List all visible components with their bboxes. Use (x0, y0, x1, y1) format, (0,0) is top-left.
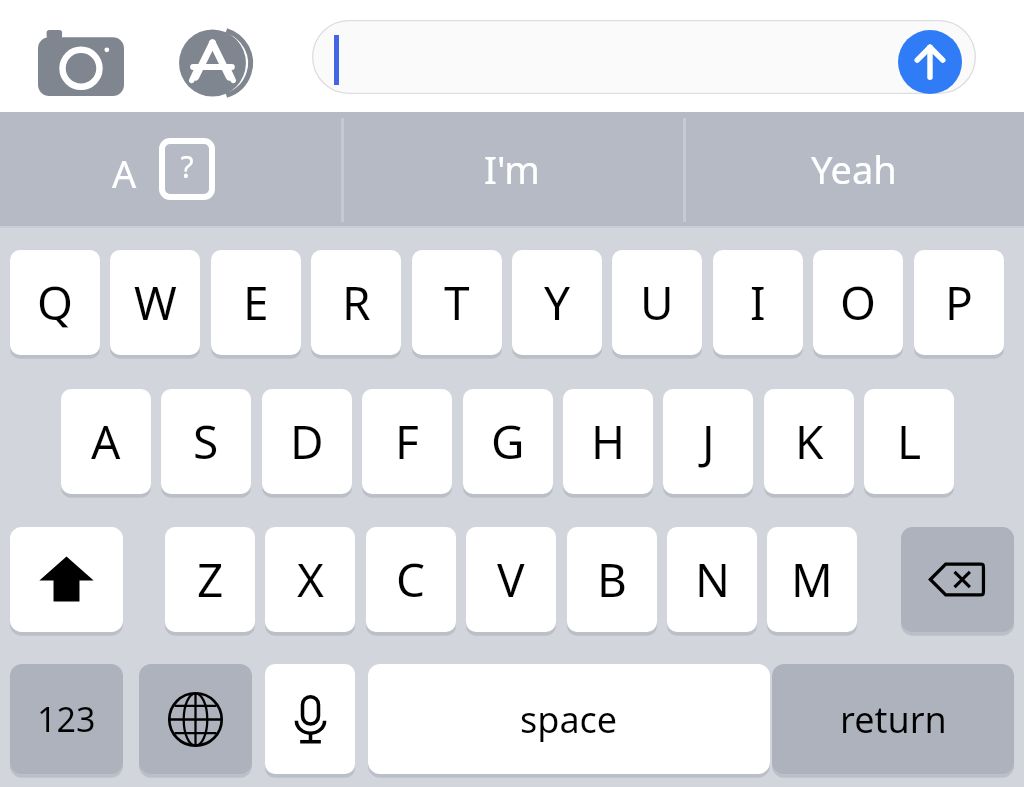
staticText: B (597, 548, 627, 611)
staticText: T (444, 271, 470, 334)
staticText: Z (197, 548, 224, 611)
staticText: return (840, 695, 947, 744)
button[interactable]: O (813, 250, 903, 355)
staticText: L (897, 410, 922, 473)
staticText: X (297, 548, 324, 611)
staticText: S (193, 410, 219, 473)
button[interactable]: F (362, 389, 452, 494)
button[interactable]: C (366, 527, 456, 632)
staticText: G (491, 410, 525, 473)
button[interactable]: M (767, 527, 857, 632)
staticText: I (750, 271, 766, 334)
staticText: C (396, 548, 426, 611)
staticText: U (640, 271, 674, 334)
button[interactable]: R (311, 250, 401, 355)
button[interactable]: Next keyboard (139, 664, 252, 774)
staticText: K (795, 410, 824, 473)
button[interactable]: I'm (341, 112, 683, 226)
button[interactable]: U (612, 250, 702, 355)
button[interactable]: Camera (38, 30, 124, 96)
button[interactable]: A (0, 112, 341, 226)
button[interactable]: I (713, 250, 803, 355)
staticText: D (290, 410, 324, 473)
button[interactable]: Send (898, 30, 962, 94)
button[interactable]: T (412, 250, 502, 355)
staticText: P (945, 271, 973, 334)
button[interactable]: H (563, 389, 653, 494)
staticText: O (840, 271, 876, 334)
staticText: 123 (37, 696, 96, 742)
staticText: Yeah (811, 143, 897, 195)
button[interactable]: Dictate (265, 664, 355, 774)
button[interactable]: App Store (172, 25, 264, 101)
button[interactable]: Shift (10, 527, 123, 632)
staticText: I'm (484, 143, 540, 195)
button[interactable]: B (567, 527, 657, 632)
button[interactable]: E (211, 250, 301, 355)
button[interactable]: J (663, 389, 753, 494)
staticText: F (395, 410, 419, 473)
button[interactable]: N (667, 527, 757, 632)
button[interactable]: K (764, 389, 854, 494)
button[interactable]: Yeah (683, 112, 1024, 226)
staticText: M (791, 548, 833, 611)
staticText: E (243, 271, 269, 334)
staticText: H (591, 410, 626, 473)
staticText: A (112, 147, 137, 199)
button[interactable]: Q (10, 250, 100, 355)
staticText: Q (37, 271, 73, 334)
staticText: Y (544, 271, 571, 334)
button[interactable]: D (262, 389, 352, 494)
staticText: N (695, 548, 730, 611)
button[interactable]: X (265, 527, 355, 632)
button[interactable]: A (61, 389, 151, 494)
staticText: R (342, 271, 371, 334)
button[interactable]: L (864, 389, 954, 494)
staticText: A (91, 410, 121, 473)
button[interactable]: Backspace (901, 527, 1014, 632)
button[interactable]: Z (165, 527, 255, 632)
button[interactable]: space (368, 664, 770, 774)
button[interactable]: G (463, 389, 553, 494)
button[interactable]: V (466, 527, 556, 632)
staticText: ? (162, 146, 212, 202)
button[interactable]: Y (512, 250, 602, 355)
staticText: space (520, 695, 618, 744)
button[interactable]: S (161, 389, 251, 494)
button[interactable]: W (110, 250, 200, 355)
staticText: J (702, 410, 715, 473)
staticText: W (134, 271, 177, 334)
button[interactable]: 123 (10, 664, 123, 774)
staticText: V (497, 548, 525, 611)
button[interactable]: P (914, 250, 1004, 355)
button[interactable]: return (772, 664, 1014, 774)
button[interactable] (312, 20, 976, 94)
